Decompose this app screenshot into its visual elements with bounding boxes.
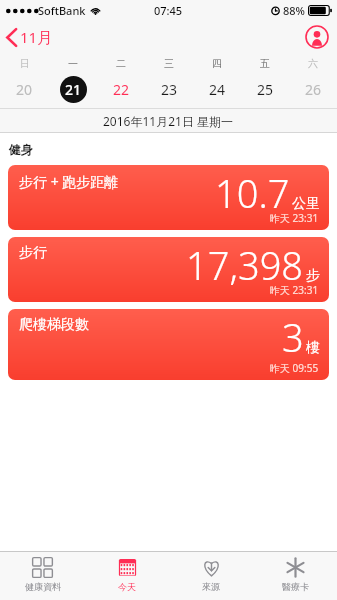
staticText: 醫療卡 [282, 581, 309, 592]
button[interactable]: Profile [305, 25, 329, 49]
staticText: 步行 + 跑步距離 [19, 172, 119, 191]
staticText: 日 [20, 57, 30, 70]
staticText: 3 [282, 311, 304, 363]
staticText: 公里 [292, 195, 320, 213]
staticText: 2016年11月21日 星期一 [103, 113, 234, 129]
staticText: 爬樓梯段數 [19, 316, 89, 334]
button[interactable]: 24 [193, 75, 241, 103]
button[interactable]: 25 [241, 75, 289, 103]
staticText: 21 [65, 80, 82, 99]
button[interactable]: 26 [289, 75, 337, 103]
staticText: 07:45 [154, 3, 183, 18]
staticText: 三 [164, 57, 174, 70]
staticText: 昨天 23:31 [270, 283, 319, 297]
staticText: 健康資料 [25, 581, 61, 592]
staticText: 四 [212, 57, 222, 70]
button[interactable]: 23 [145, 75, 193, 103]
staticText: 健身 [9, 142, 33, 157]
button[interactable]: 11月 [0, 23, 61, 51]
staticText: 步行 [19, 244, 47, 262]
button[interactable]: 步行 + 跑步距離 [8, 165, 329, 230]
staticText: 26 [305, 80, 322, 99]
button[interactable]: 20 [0, 75, 49, 103]
staticText: 11月 [20, 27, 53, 47]
button[interactable]: 今天 [85, 552, 169, 600]
staticText: 88% [283, 3, 305, 18]
button[interactable]: 22 [97, 75, 145, 103]
staticText: 來源 [202, 581, 220, 592]
staticText: 25 [257, 80, 274, 99]
staticText: 五 [260, 57, 270, 70]
button[interactable]: 步行 [8, 237, 329, 302]
staticText: 步 [306, 267, 320, 285]
staticText: 二 [116, 57, 126, 70]
button[interactable]: 爬樓梯段數 [8, 309, 329, 380]
button[interactable]: 來源 [169, 552, 253, 600]
staticText: 22 [113, 80, 130, 99]
staticText: 23 [161, 80, 178, 99]
staticText: 樓 [306, 339, 320, 357]
button[interactable]: 醫療卡 [253, 552, 337, 600]
staticText: 20 [16, 80, 33, 99]
staticText: 今天 [118, 581, 136, 592]
staticText: SoftBank [38, 3, 86, 18]
staticText: 昨天 23:31 [270, 211, 319, 225]
button[interactable]: 21 [49, 75, 97, 103]
staticText: 六 [308, 57, 318, 70]
button[interactable]: 健康資料 [0, 552, 85, 600]
staticText: 昨天 09:55 [270, 361, 319, 375]
staticText: 17,398 [186, 239, 304, 291]
staticText: 10.7 [215, 167, 290, 219]
staticText: 24 [209, 80, 226, 99]
staticText: 一 [68, 57, 78, 70]
